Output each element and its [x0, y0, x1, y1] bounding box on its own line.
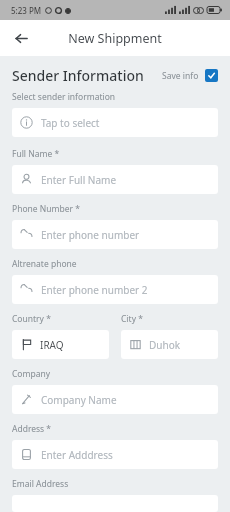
staticText: New Shippment — [68, 30, 162, 47]
button[interactable]: Back — [8, 25, 34, 51]
staticText: Company Name — [41, 393, 117, 407]
staticText: Full Name * — [12, 148, 60, 160]
staticText: Address * — [12, 423, 52, 435]
button[interactable]: Duhok — [121, 330, 218, 359]
button[interactable]: Save info — [162, 69, 218, 82]
button[interactable]: Enter Adddress — [12, 440, 218, 469]
staticText: Altrenate phone — [12, 258, 77, 270]
button[interactable]: Tap to select — [12, 108, 218, 137]
button[interactable]: IRAQ — [12, 330, 109, 359]
staticText: Duhok — [149, 338, 181, 352]
staticText: Country * — [12, 313, 51, 325]
button[interactable]: Enter phone number — [12, 220, 218, 249]
staticText: Enter Full Name — [41, 173, 117, 187]
button[interactable]: Enter Full Name — [12, 165, 218, 194]
staticText: Tap to select — [41, 116, 100, 130]
button[interactable]: Company Name — [12, 385, 218, 414]
staticText: Save info — [162, 70, 199, 82]
staticText: Phone Number * — [12, 203, 80, 215]
staticText: Company — [12, 368, 51, 380]
staticText: City * — [121, 313, 143, 325]
staticText: 5:23 PM — [11, 5, 42, 16]
staticText: IRAQ — [40, 338, 64, 352]
staticText: Sender Information — [12, 66, 144, 85]
button[interactable]: Enter phone number 2 — [12, 275, 218, 304]
staticText: Enter phone number 2 — [41, 283, 148, 297]
staticText: Select sender information — [12, 91, 116, 103]
staticText: Email Address — [12, 478, 69, 490]
staticText: Enter phone number — [41, 228, 140, 242]
staticText: Enter Adddress — [41, 448, 113, 462]
